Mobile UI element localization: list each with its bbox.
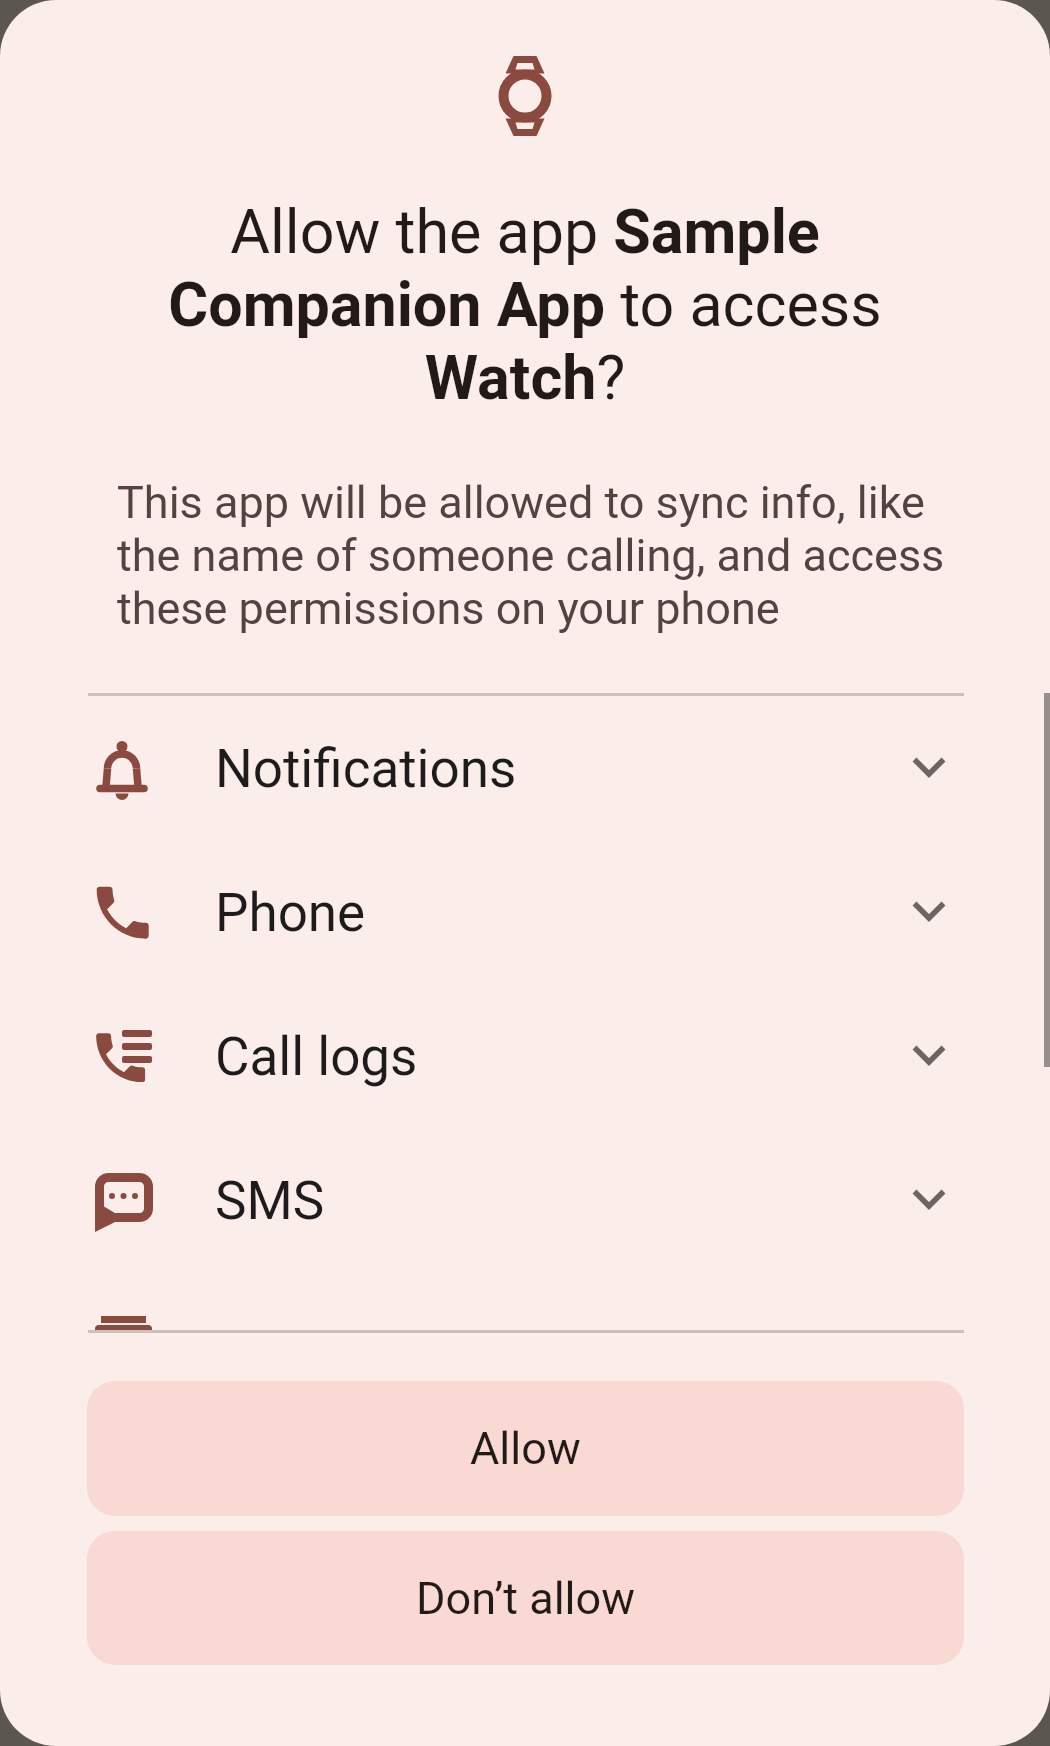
button[interactable]: Call logs bbox=[0, 985, 1050, 1129]
staticText: Call logs bbox=[215, 1026, 418, 1088]
staticText: This app will be allowed to sync info, l… bbox=[117, 476, 977, 635]
staticText: Allow the app Sample Companion App to ac… bbox=[75, 196, 975, 414]
staticText: Don’t allow bbox=[416, 1572, 636, 1625]
button[interactable]: Notifications bbox=[0, 697, 1050, 841]
staticText: Allow bbox=[470, 1422, 581, 1475]
staticText: Phone bbox=[215, 882, 366, 944]
staticText: Notifications bbox=[215, 738, 517, 800]
button[interactable]: SMS bbox=[0, 1129, 1050, 1273]
staticText: SMS bbox=[215, 1170, 325, 1232]
button[interactable]: Phone bbox=[0, 841, 1050, 985]
button[interactable]: Don’t allow bbox=[87, 1531, 964, 1665]
button[interactable]: Allow bbox=[87, 1381, 964, 1516]
